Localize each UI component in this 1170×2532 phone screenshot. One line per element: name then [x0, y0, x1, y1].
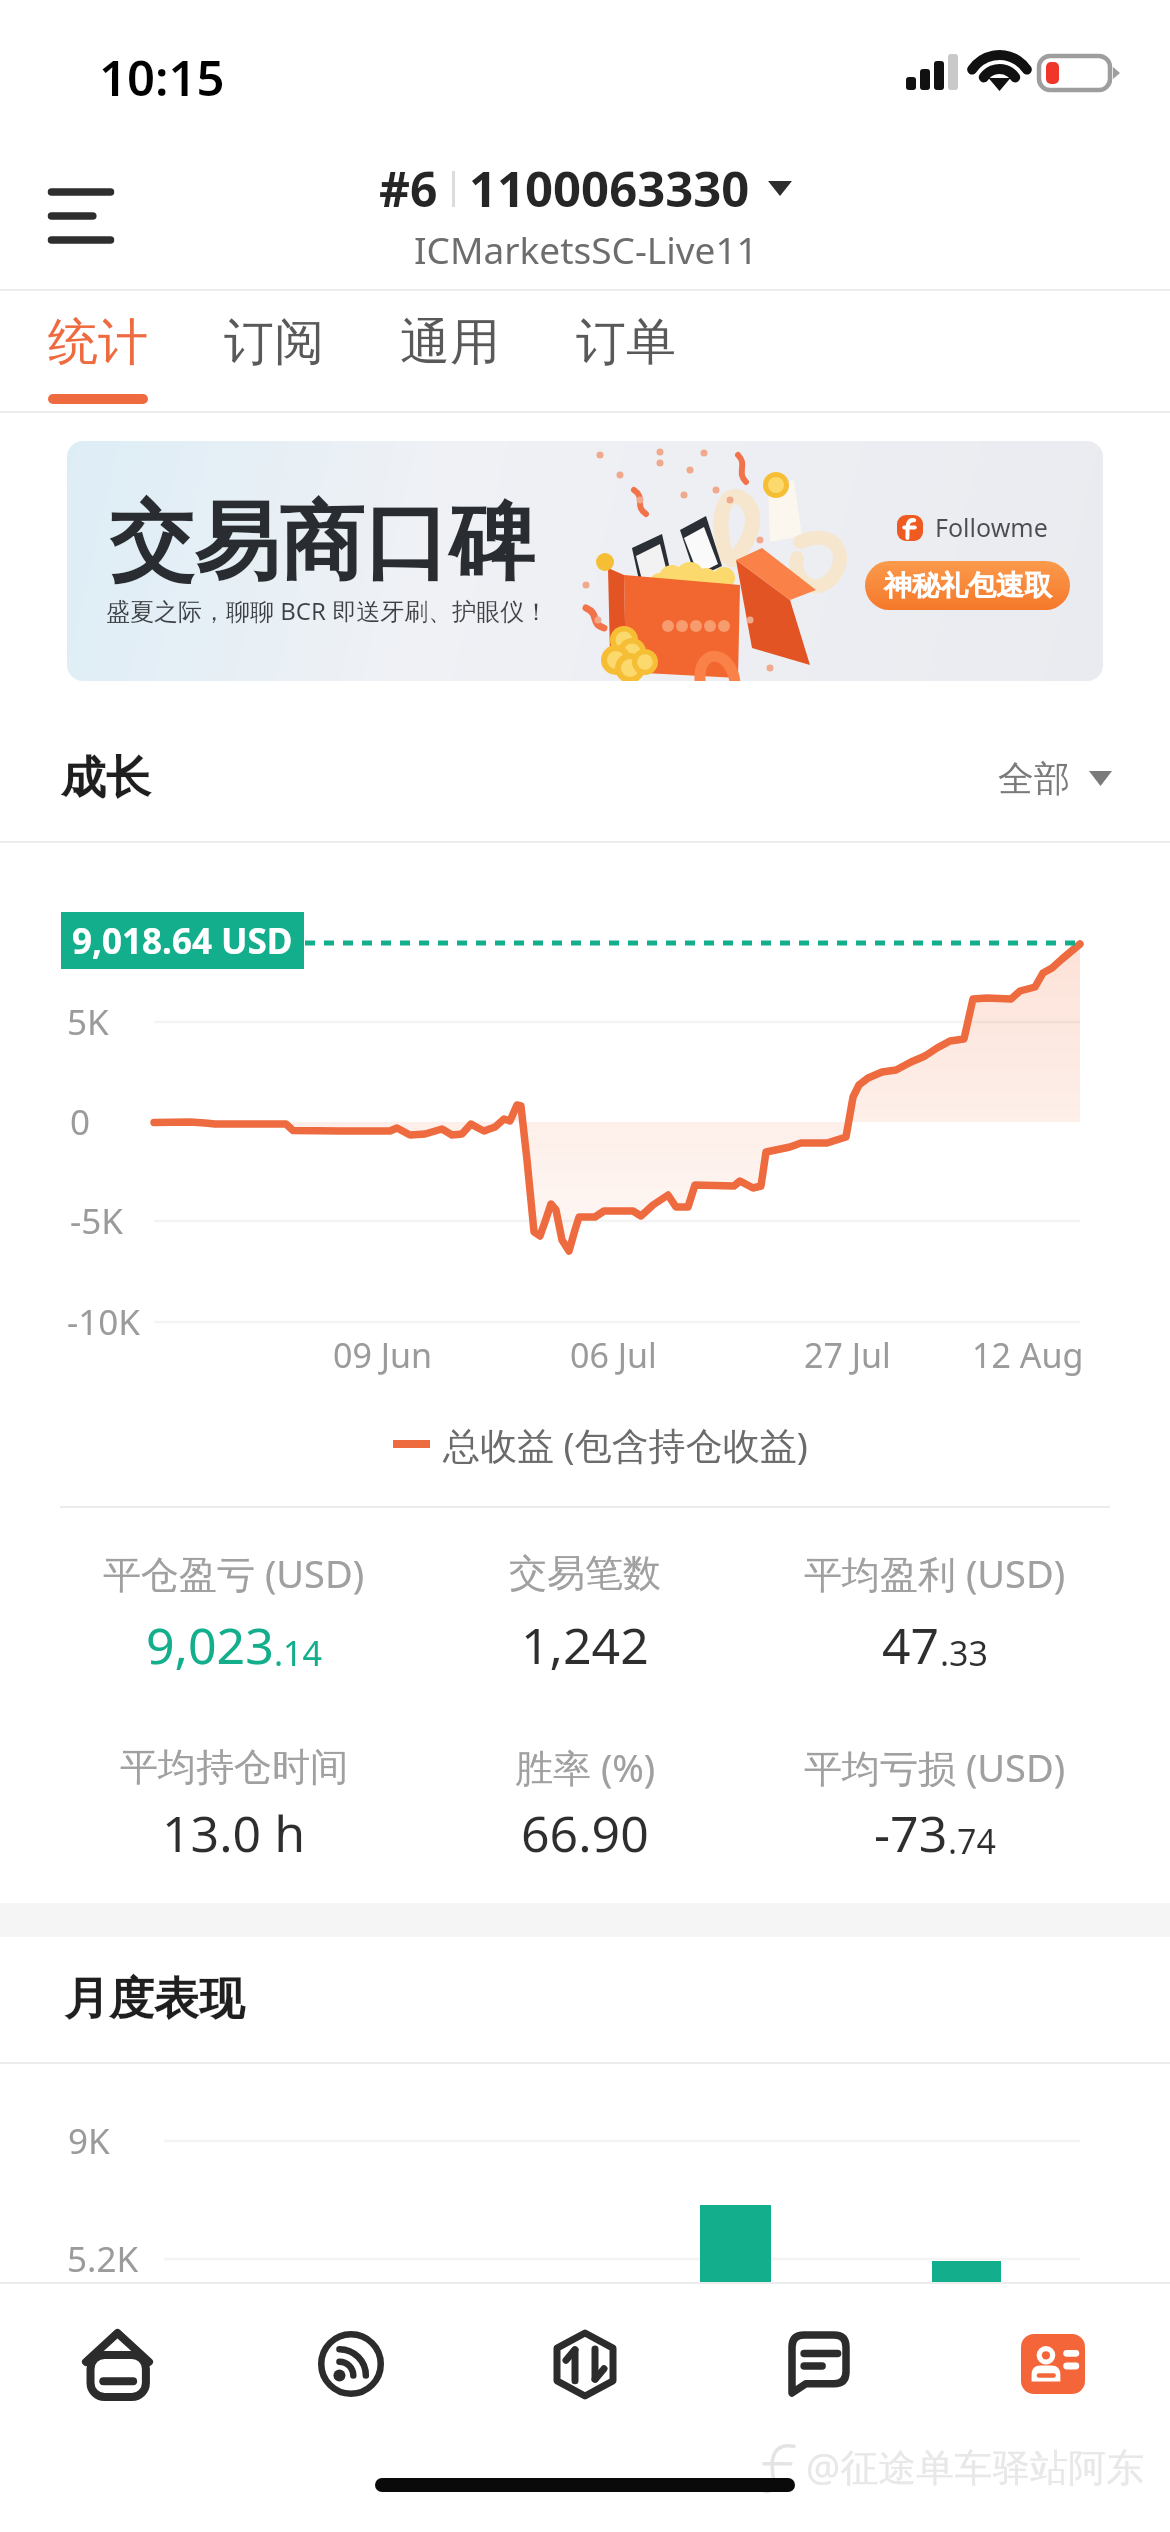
staticText: 平均亏损 (USD) — [804, 1741, 1066, 1793]
staticText: 9,018.64 USD — [72, 917, 293, 965]
staticText: 09 Jun — [333, 1332, 433, 1378]
staticText: 5K — [67, 998, 109, 1046]
staticText: Followme — [935, 510, 1048, 544]
staticText: 13.0 h — [162, 1799, 306, 1867]
button[interactable]: 神秘礼包速取 — [865, 561, 1070, 610]
staticText: 胜率 (%) — [515, 1741, 656, 1793]
staticText: 9K — [68, 2117, 110, 2165]
staticText: -5K — [70, 1197, 123, 1245]
staticText: 订单 — [576, 311, 676, 374]
button[interactable]: Messages — [702, 2282, 936, 2446]
staticText: @征途单车驿站阿东 — [806, 2440, 1145, 2492]
button[interactable]: Menu — [21, 156, 141, 276]
button[interactable]: Switch account — [379, 155, 792, 273]
staticText: 交易商口碑 — [109, 489, 534, 596]
staticText: .33 — [940, 1630, 989, 1676]
staticText: 订阅 — [224, 311, 324, 374]
staticText: 交易笔数 — [509, 1549, 661, 1597]
button[interactable]: Home — [0, 2282, 234, 2446]
staticText: 月度表现 — [64, 1971, 244, 2028]
staticText: 12 Aug — [972, 1332, 1084, 1378]
staticText: 27 Jul — [804, 1332, 891, 1378]
staticText: 平仓盈亏 (USD) — [103, 1547, 365, 1599]
button[interactable]: Profile — [936, 2282, 1170, 2446]
staticText: 1,242 — [521, 1611, 649, 1679]
button[interactable]: 统计 — [10, 291, 186, 411]
staticText: 47 — [882, 1611, 940, 1679]
staticText: 总收益 (包含持仓收益) — [443, 1419, 808, 1470]
staticText: .74 — [948, 1818, 997, 1864]
staticText: 1100063330 — [469, 155, 750, 222]
staticText: .14 — [274, 1630, 323, 1676]
staticText: 10:15 — [99, 44, 225, 111]
staticText: -10K — [67, 1298, 140, 1346]
staticText: 5.2K — [67, 2235, 139, 2283]
staticText: 9,023 — [146, 1611, 274, 1679]
staticText: 平均持仓时间 — [120, 1743, 348, 1791]
staticText: 统计 — [48, 311, 148, 374]
button[interactable]: Signals — [234, 2282, 468, 2446]
button[interactable]: Period filter — [998, 748, 1112, 808]
staticText: 66.90 — [521, 1799, 649, 1867]
staticText: -73 — [874, 1799, 948, 1867]
staticText: 神秘礼包速取 — [884, 568, 1052, 603]
button[interactable]: Trade — [468, 2282, 702, 2446]
staticText: 成长 — [61, 750, 151, 807]
button[interactable]: 通用 — [362, 291, 538, 411]
staticText: 0 — [70, 1098, 91, 1146]
staticText: 平均盈利 (USD) — [804, 1547, 1066, 1599]
button[interactable]: 交易商口碑 — [67, 441, 1103, 681]
staticText: 通用 — [400, 311, 500, 374]
staticText: ICMarketsSC-Live11 — [414, 224, 758, 273]
button[interactable]: 订单 — [538, 291, 714, 411]
staticText: #6 — [379, 156, 438, 221]
staticText: 盛夏之际，聊聊 BCR 即送牙刷、护眼仪！ — [106, 594, 549, 627]
staticText: 全部 — [998, 756, 1070, 801]
staticText: 06 Jul — [570, 1332, 657, 1378]
button[interactable]: 订阅 — [186, 291, 362, 411]
